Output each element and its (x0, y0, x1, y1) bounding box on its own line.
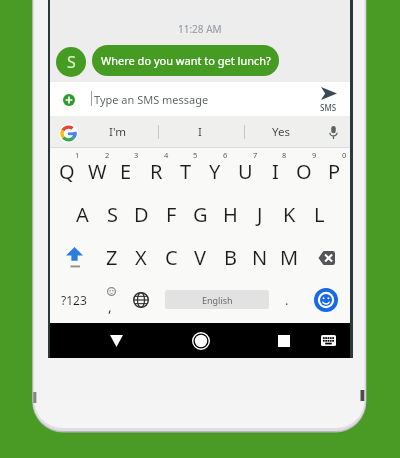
staticText: Where do you want to get lunch? (101, 53, 271, 68)
button[interactable]: Shift (52, 236, 96, 279)
staticText: 2 (105, 150, 110, 160)
button[interactable]: W (82, 150, 112, 193)
staticText: Type an SMS message (94, 92, 209, 107)
staticText: 5 (193, 150, 198, 160)
button[interactable]: E (111, 150, 141, 193)
button[interactable]: S (97, 193, 127, 236)
staticText: 1 (75, 150, 80, 160)
staticText: E (120, 158, 132, 185)
staticText: S (107, 201, 118, 228)
button[interactable]: P (319, 150, 349, 193)
button[interactable]: K (274, 193, 304, 236)
button[interactable]: English (165, 290, 269, 309)
staticText: 11:28 AM (178, 22, 222, 36)
button[interactable]: L (304, 193, 334, 236)
button[interactable]: Hide keyboard (308, 323, 348, 358)
staticText: Yes (272, 124, 290, 140)
button[interactable]: B (215, 236, 245, 279)
staticText: Q (59, 158, 75, 185)
staticText: P (328, 158, 341, 185)
staticText: K (283, 201, 296, 228)
button[interactable]: H (215, 193, 245, 236)
staticText: 9 (312, 150, 317, 160)
button[interactable]: Home (181, 323, 221, 358)
staticText: G (193, 201, 208, 228)
button[interactable]: Voice input (319, 116, 347, 148)
button[interactable]: Change language (126, 278, 156, 321)
staticText: ?123 (61, 292, 87, 308)
staticText: H (223, 201, 238, 228)
button[interactable]: I'm (93, 116, 141, 148)
button[interactable]: N (245, 236, 275, 279)
staticText: Z (106, 244, 118, 271)
button[interactable]: ?123 (50, 278, 97, 321)
staticText: I (272, 158, 279, 185)
staticText: 0 (342, 150, 347, 160)
button[interactable]: S (56, 47, 86, 77)
button[interactable]: , (94, 278, 124, 321)
staticText: U (238, 158, 253, 185)
staticText: V (194, 244, 206, 271)
button[interactable]: J (245, 193, 275, 236)
button[interactable]: F (156, 193, 186, 236)
button[interactable]: O (289, 150, 319, 193)
staticText: O (296, 158, 312, 185)
button[interactable]: Recents (264, 323, 304, 358)
staticText: F (166, 201, 177, 228)
staticText: S (67, 51, 76, 73)
staticText: . (285, 291, 289, 309)
staticText: X (135, 244, 147, 271)
staticText: T (180, 158, 192, 185)
button[interactable]: D (126, 193, 156, 236)
button[interactable]: M (274, 236, 304, 279)
staticText: R (150, 158, 163, 185)
button[interactable]: I (260, 150, 290, 193)
staticText: J (257, 201, 263, 228)
staticText: D (134, 201, 149, 228)
button[interactable]: Q (52, 150, 82, 193)
button[interactable]: Y (200, 150, 230, 193)
staticText: M (280, 244, 299, 271)
button[interactable]: U (230, 150, 260, 193)
staticText: English (202, 294, 233, 306)
staticText: 6 (223, 150, 228, 160)
staticText: 8 (282, 150, 287, 160)
staticText: N (252, 244, 268, 271)
button[interactable]: Backspace (304, 236, 348, 279)
button[interactable]: Z (97, 236, 127, 279)
button[interactable]: R (141, 150, 171, 193)
staticText: , (108, 297, 112, 316)
button[interactable]: T (171, 150, 201, 193)
button[interactable]: C (156, 236, 186, 279)
staticText: W (88, 158, 107, 185)
staticText: B (224, 244, 237, 271)
staticText: Y (209, 158, 221, 185)
button[interactable]: Emoji (308, 278, 344, 321)
button[interactable]: Add attachment (63, 94, 75, 106)
button[interactable]: G (185, 193, 215, 236)
button[interactable]: Google (59, 124, 78, 143)
button[interactable]: X (126, 236, 156, 279)
button[interactable]: I (176, 116, 224, 148)
button[interactable]: . (275, 278, 299, 321)
button[interactable]: Where do you want to get lunch? (92, 45, 279, 76)
staticText: 3 (134, 150, 139, 160)
button[interactable]: Yes (257, 116, 305, 148)
staticText: 7 (253, 150, 258, 160)
staticText: I (198, 124, 202, 140)
button[interactable]: A (67, 193, 97, 236)
button[interactable]: V (185, 236, 215, 279)
staticText: SMS (320, 102, 337, 113)
button[interactable]: Send SMS (312, 82, 348, 116)
staticText: I'm (109, 124, 126, 140)
button[interactable]: Back (96, 323, 136, 358)
staticText: C (165, 244, 178, 271)
staticText: L (314, 201, 325, 228)
staticText: A (76, 201, 89, 228)
staticText: 4 (164, 150, 169, 160)
